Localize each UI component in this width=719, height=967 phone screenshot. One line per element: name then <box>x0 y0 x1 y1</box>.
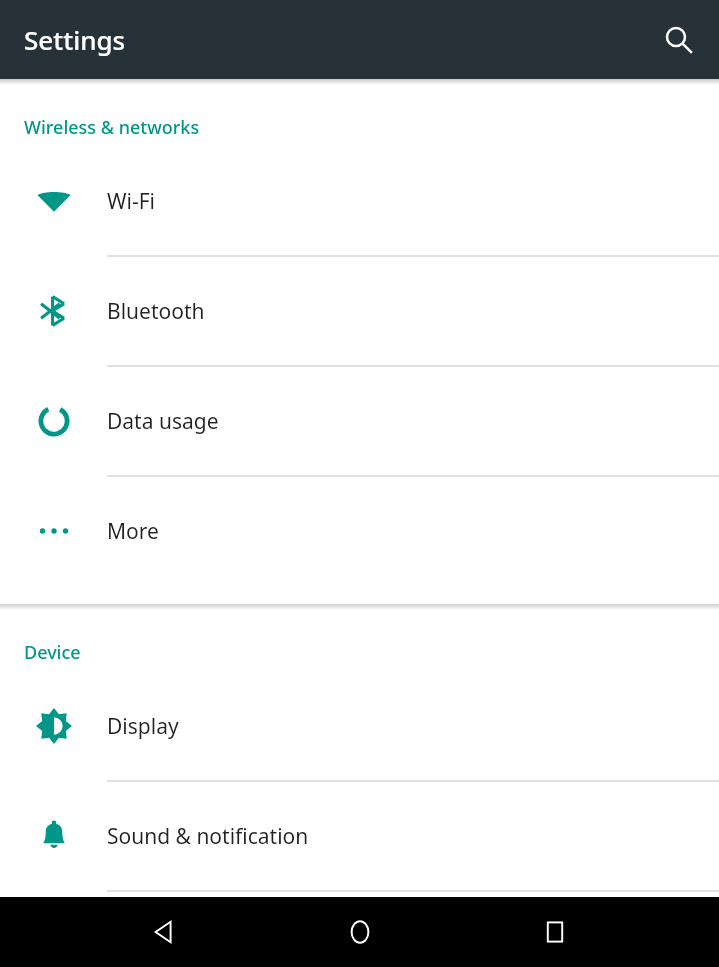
staticText: Data usage <box>107 407 219 436</box>
staticText: Wi-Fi <box>107 187 156 216</box>
button[interactable]: Data usage <box>0 367 719 477</box>
button[interactable]: Wi-Fi <box>0 147 719 257</box>
staticText: Settings <box>24 22 126 57</box>
staticText: More <box>107 517 159 546</box>
button[interactable]: More <box>0 477 719 587</box>
button[interactable]: Search <box>653 14 705 66</box>
button[interactable]: Sound & notification <box>0 782 719 892</box>
staticText: Device <box>24 640 81 665</box>
staticText: Sound & notification <box>107 822 309 851</box>
button[interactable]: Recents <box>523 900 587 964</box>
button[interactable]: Display <box>0 672 719 782</box>
staticText: Bluetooth <box>107 297 205 326</box>
staticText: Display <box>107 712 179 741</box>
button[interactable]: Back <box>132 900 196 964</box>
button[interactable]: Bluetooth <box>0 257 719 367</box>
staticText: Wireless & networks <box>24 115 200 140</box>
button[interactable]: Home <box>328 900 392 964</box>
